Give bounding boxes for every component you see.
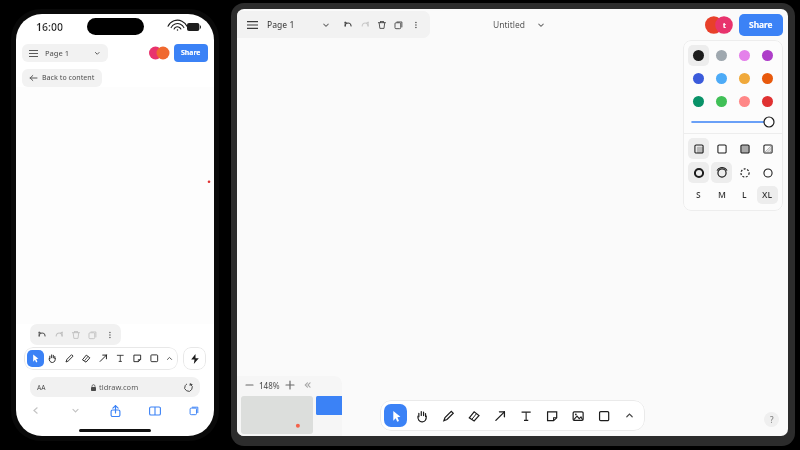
button[interactable]: Note tool bbox=[129, 350, 146, 367]
other: Menu bbox=[29, 50, 38, 57]
button[interactable]: Color bbox=[688, 45, 709, 66]
button[interactable]: Eraser tool bbox=[462, 404, 485, 427]
button[interactable]: Help bbox=[764, 412, 779, 427]
button[interactable]: Color bbox=[688, 68, 709, 89]
button[interactable]: Duplicate bbox=[390, 16, 407, 33]
button[interactable]: More bbox=[407, 16, 424, 33]
button[interactable]: Back bbox=[25, 400, 46, 421]
button[interactable]: Select tool bbox=[27, 350, 44, 367]
button[interactable]: Image tool bbox=[566, 404, 589, 427]
button[interactable]: Fill style bbox=[711, 138, 732, 159]
staticText: L bbox=[742, 189, 747, 201]
button[interactable]: Dash style bbox=[711, 162, 732, 183]
button[interactable]: Draw tool bbox=[436, 404, 459, 427]
staticText: XL bbox=[762, 189, 773, 201]
staticText: tldraw.com bbox=[99, 382, 139, 392]
button[interactable]: 148% bbox=[259, 380, 280, 391]
staticText: 148% bbox=[259, 380, 280, 391]
button[interactable]: Color bbox=[757, 45, 778, 66]
button[interactable]: Fill style bbox=[688, 138, 709, 159]
staticText: Untitled bbox=[493, 19, 526, 31]
button[interactable]: Hand tool bbox=[44, 350, 61, 367]
button[interactable]: Collaborators bbox=[705, 16, 734, 34]
button[interactable]: Arrow tool bbox=[488, 404, 511, 427]
button[interactable]: Untitled bbox=[489, 16, 549, 34]
button[interactable]: Fill style bbox=[757, 138, 778, 159]
staticText: ? bbox=[770, 414, 774, 425]
button[interactable]: Duplicate bbox=[84, 326, 101, 343]
button[interactable]: Bookmarks bbox=[144, 400, 165, 421]
button[interactable]: Undo bbox=[339, 16, 356, 33]
button[interactable]: Eraser tool bbox=[78, 350, 95, 367]
other: Reload bbox=[184, 383, 193, 392]
button[interactable]: Forward bbox=[65, 400, 86, 421]
button[interactable]: Color bbox=[757, 91, 778, 112]
button[interactable]: S bbox=[688, 186, 709, 204]
staticText: AA bbox=[37, 383, 46, 392]
button[interactable]: Back to content bbox=[22, 69, 102, 87]
button[interactable]: More tools bbox=[163, 350, 175, 367]
button[interactable]: Redo bbox=[50, 326, 67, 343]
button[interactable]: Quick actions bbox=[183, 347, 206, 370]
staticText: Page 1 bbox=[267, 19, 295, 31]
button[interactable]: More bbox=[101, 326, 118, 343]
button[interactable]: Color bbox=[734, 45, 755, 66]
button[interactable]: Menu bbox=[22, 44, 108, 62]
button[interactable]: Fill style bbox=[734, 138, 755, 159]
button[interactable]: Zoom out bbox=[242, 378, 256, 392]
button[interactable]: Color bbox=[734, 68, 755, 89]
staticText: t bbox=[723, 21, 726, 30]
button[interactable]: Hand tool bbox=[410, 404, 433, 427]
button[interactable]: Delete bbox=[373, 16, 390, 33]
button[interactable]: Text tool bbox=[514, 404, 537, 427]
button[interactable]: Opacity bbox=[692, 114, 774, 130]
button[interactable]: More tools bbox=[618, 404, 641, 427]
button[interactable]: Share bbox=[739, 14, 783, 36]
button[interactable]: Share bbox=[105, 400, 126, 421]
staticText: Page 1 bbox=[45, 48, 70, 58]
button[interactable]: Arrow tool bbox=[95, 350, 112, 367]
button[interactable]: Note tool bbox=[540, 404, 563, 427]
button[interactable]: Color bbox=[711, 91, 732, 112]
button[interactable]: Color bbox=[734, 91, 755, 112]
button[interactable]: Color bbox=[711, 45, 732, 66]
button[interactable]: Tabs bbox=[184, 400, 205, 421]
staticText: Back to content bbox=[42, 73, 95, 83]
staticText: S bbox=[696, 189, 701, 201]
button[interactable]: Rectangle tool bbox=[146, 350, 163, 367]
button[interactable]: L bbox=[734, 186, 755, 204]
button[interactable]: XL bbox=[757, 186, 778, 204]
staticText: M bbox=[718, 189, 726, 201]
button[interactable]: Dash style bbox=[757, 162, 778, 183]
button[interactable]: Pages bbox=[319, 18, 333, 32]
staticText: Share bbox=[749, 19, 773, 31]
button[interactable]: Dash style bbox=[688, 162, 709, 183]
button[interactable]: Redo bbox=[356, 16, 373, 33]
button[interactable]: Color bbox=[757, 68, 778, 89]
button[interactable]: Rectangle tool bbox=[592, 404, 615, 427]
staticText: 16:00 bbox=[36, 20, 63, 34]
button[interactable]: Collaborators bbox=[149, 46, 170, 60]
button[interactable]: Color bbox=[711, 68, 732, 89]
button[interactable]: Collapse minimap bbox=[300, 378, 314, 392]
button[interactable]: Share bbox=[174, 44, 208, 62]
button[interactable]: Undo bbox=[33, 326, 50, 343]
button[interactable]: Color bbox=[688, 91, 709, 112]
button[interactable]: AA bbox=[30, 377, 200, 397]
button[interactable]: Delete bbox=[67, 326, 84, 343]
button[interactable]: Menu bbox=[245, 18, 259, 32]
button[interactable]: Dash style bbox=[734, 162, 755, 183]
staticText: Share bbox=[181, 48, 201, 58]
button[interactable]: Page 1 bbox=[267, 19, 295, 31]
button[interactable]: Text tool bbox=[112, 350, 129, 367]
button[interactable]: Draw tool bbox=[61, 350, 78, 367]
button[interactable]: Select tool bbox=[384, 404, 407, 427]
button[interactable]: Zoom in bbox=[283, 378, 297, 392]
button[interactable]: M bbox=[711, 186, 732, 204]
